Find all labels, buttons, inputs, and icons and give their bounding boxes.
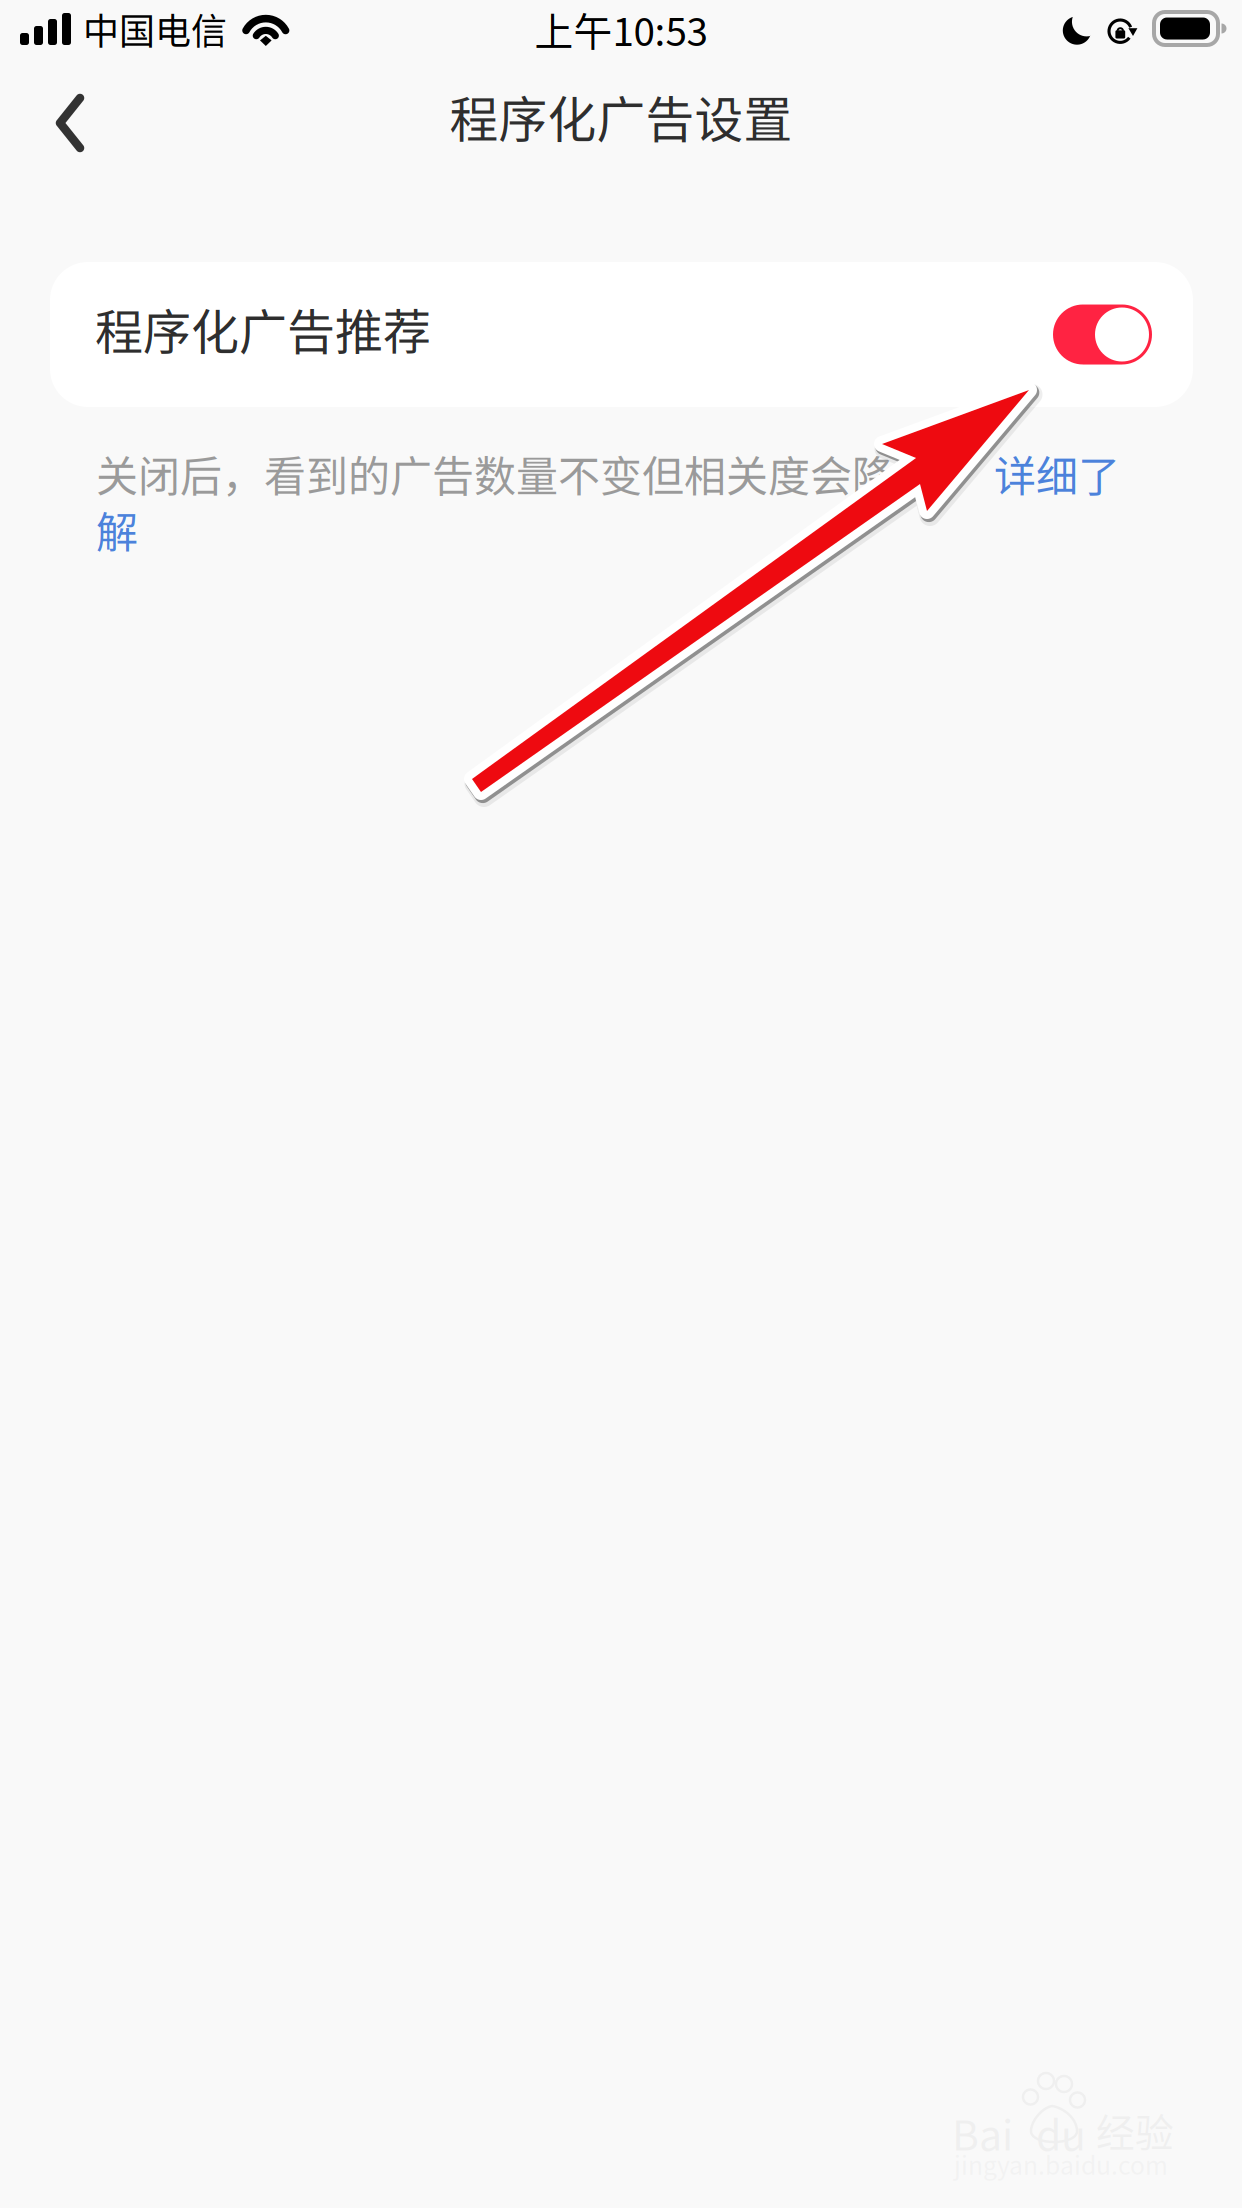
button[interactable]: 详细了解 bbox=[96, 499, 138, 560]
button[interactable]: 返回 bbox=[14, 67, 126, 179]
staticText: 解 bbox=[96, 499, 138, 560]
staticText: Bai bbox=[952, 2103, 1013, 2162]
staticText: 中国电信 bbox=[83, 3, 227, 55]
staticText: 上午10:53 bbox=[534, 1, 707, 57]
staticText: 关闭后，看到的广告数量不变但相关度会降低。 bbox=[96, 443, 978, 504]
staticText: 经验 bbox=[1096, 2102, 1174, 2158]
staticText: du bbox=[1036, 2103, 1086, 2162]
staticText: 程序化广告设置 bbox=[449, 81, 792, 151]
staticText: 详细了 bbox=[994, 443, 1120, 504]
button[interactable]: 程序化广告推荐 bbox=[50, 262, 1193, 407]
button[interactable]: 详细了解 bbox=[994, 443, 1120, 504]
staticText: 程序化广告推荐 bbox=[95, 294, 431, 363]
